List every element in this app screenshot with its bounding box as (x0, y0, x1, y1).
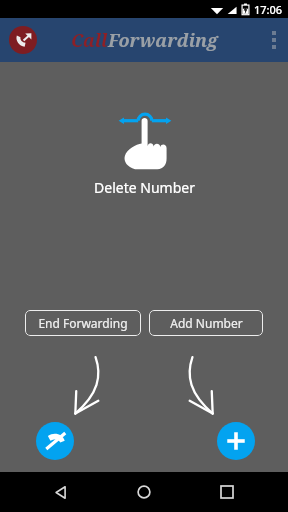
button[interactable]: More options (260, 18, 288, 62)
staticText: Delete Number (94, 178, 195, 197)
staticText: 17:06 (254, 2, 283, 17)
button[interactable]: Recent apps (205, 472, 249, 512)
staticText: Call (71, 28, 108, 53)
button[interactable]: Back (39, 472, 83, 512)
button[interactable]: App logo (9, 26, 37, 54)
button[interactable]: End Forwarding (25, 310, 141, 336)
button[interactable]: Home (122, 472, 166, 512)
staticText: Add Number (170, 315, 243, 331)
staticText: End Forwarding (38, 315, 128, 331)
staticText: Forwarding (108, 28, 218, 53)
button[interactable]: Add Number (149, 310, 263, 336)
button[interactable]: End forwarding (36, 422, 74, 460)
button[interactable]: Add number (217, 422, 255, 460)
